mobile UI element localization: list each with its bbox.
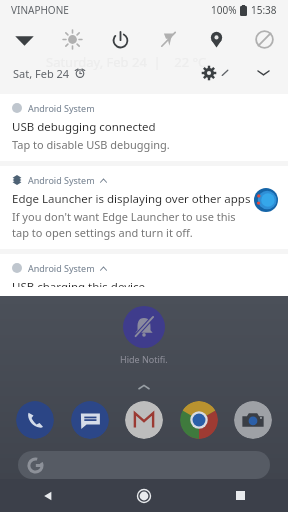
button[interactable]: Home: [96, 479, 192, 512]
staticText: USB charging this device: [12, 279, 145, 287]
staticText: 100%: [211, 3, 237, 17]
staticText: USB debugging connected: [12, 119, 156, 135]
staticText: Android System: [28, 262, 95, 274]
button[interactable]: Power: [96, 20, 144, 58]
staticText: Android System: [28, 102, 95, 114]
button[interactable]: Search: [18, 451, 270, 479]
button[interactable]: Back: [0, 479, 96, 512]
button[interactable]: Settings: [198, 62, 220, 84]
button[interactable]: Camera: [234, 401, 272, 439]
button[interactable]: Gmail: [125, 401, 163, 439]
staticText: VINAPHONE: [11, 3, 69, 17]
button[interactable]: Brightness: [48, 20, 96, 58]
button[interactable]: Wi-Fi: [0, 20, 48, 58]
button[interactable]: Chrome: [180, 401, 218, 439]
staticText: 15:38: [251, 3, 277, 17]
button[interactable]: Hide Notifications: [123, 306, 165, 348]
button[interactable]: Location: [192, 20, 240, 58]
button[interactable]: Phone: [16, 401, 54, 439]
staticText: Edge Launcher is displaying over other a…: [12, 191, 251, 207]
button[interactable]: Do not disturb: [240, 20, 288, 58]
button[interactable]: Android System: [0, 94, 288, 161]
staticText: Saturday, Feb 24 | 22 °C: [46, 53, 207, 71]
staticText: If you don't want Edge Launcher to use t…: [12, 209, 254, 224]
button[interactable]: Android System: [0, 254, 288, 296]
staticText: Tap to disable USB debugging.: [12, 137, 170, 152]
staticText: Android System: [28, 174, 95, 186]
button[interactable]: Android System: [0, 166, 288, 249]
button[interactable]: Expand: [251, 61, 275, 85]
staticText: Hide Notifi.: [120, 353, 168, 365]
button[interactable]: Recents: [192, 479, 288, 512]
button[interactable]: Messages: [71, 401, 109, 439]
staticText: Sat, Feb 24: [13, 66, 70, 81]
button[interactable]: Flashlight off: [144, 20, 192, 58]
staticText: tap to open settings and turn it off.: [12, 225, 193, 240]
